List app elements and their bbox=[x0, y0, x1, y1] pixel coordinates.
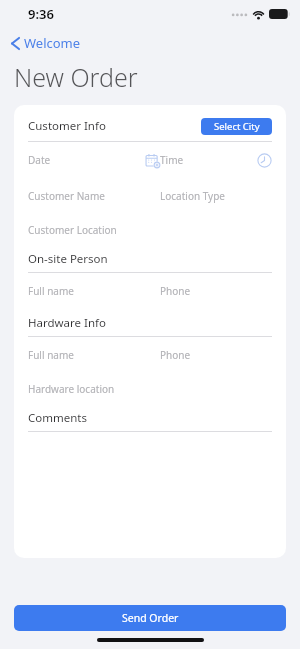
button[interactable]: Date bbox=[28, 153, 51, 167]
staticText: Date bbox=[28, 153, 51, 167]
button[interactable]: Time bbox=[160, 153, 184, 167]
button[interactable]: Location Type bbox=[160, 189, 225, 203]
staticText: Location Type bbox=[160, 189, 225, 203]
button[interactable]: Send Order bbox=[14, 605, 286, 631]
button[interactable]: Hardware Info bbox=[14, 309, 286, 336]
staticText: Full name bbox=[28, 348, 74, 362]
staticText: 9:36 bbox=[28, 5, 54, 23]
button[interactable]: Comments bbox=[14, 404, 286, 431]
staticText: Full name bbox=[28, 284, 74, 298]
button[interactable]: Phone bbox=[160, 348, 191, 362]
staticText: On-site Person bbox=[28, 251, 108, 267]
staticText: Send Order bbox=[122, 611, 179, 625]
staticText: Customer Name bbox=[28, 189, 105, 203]
button[interactable]: On-site Person bbox=[14, 245, 286, 272]
button[interactable]: Phone bbox=[160, 284, 191, 298]
button[interactable]: Pick time bbox=[257, 153, 272, 168]
staticText: Phone bbox=[160, 284, 191, 298]
staticText: Select City bbox=[214, 120, 260, 133]
button[interactable]: Customer Name bbox=[28, 189, 105, 203]
button[interactable]: Full name bbox=[28, 348, 74, 362]
staticText: Phone bbox=[160, 348, 191, 362]
button[interactable]: Customer Location bbox=[14, 214, 286, 245]
staticText: Hardware Info bbox=[28, 315, 106, 331]
staticText: Welcome bbox=[24, 34, 81, 52]
staticText: Time bbox=[160, 153, 184, 167]
button[interactable]: Pick date bbox=[145, 153, 160, 168]
staticText: Customer Location bbox=[28, 223, 117, 237]
staticText: New Order bbox=[14, 60, 138, 94]
button[interactable]: Select City bbox=[201, 118, 272, 135]
button[interactable]: Welcome bbox=[8, 30, 83, 56]
staticText: Comments bbox=[28, 410, 87, 426]
staticText: Hardware location bbox=[28, 382, 115, 396]
staticText: Customer Info bbox=[28, 118, 106, 134]
button[interactable]: Hardware location bbox=[14, 373, 286, 404]
button[interactable]: Full name bbox=[28, 284, 74, 298]
